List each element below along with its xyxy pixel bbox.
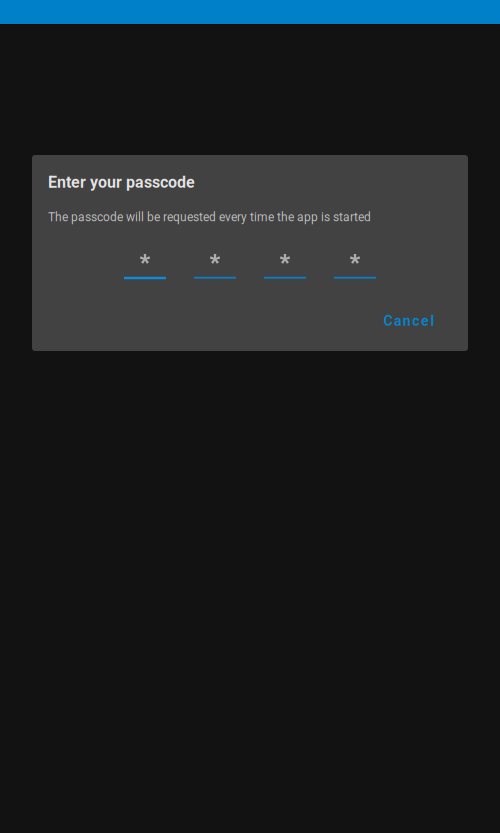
staticText: The passcode will be requested every tim… [48, 210, 371, 224]
button[interactable]: Passcode character [194, 254, 236, 288]
staticText: Enter your passcode [48, 173, 195, 192]
staticText: Cancel [383, 313, 434, 329]
button[interactable]: Passcode character [334, 254, 376, 288]
button[interactable]: Passcode character [264, 254, 306, 288]
button[interactable]: Cancel [375, 307, 443, 335]
button[interactable]: Passcode character [124, 254, 166, 288]
